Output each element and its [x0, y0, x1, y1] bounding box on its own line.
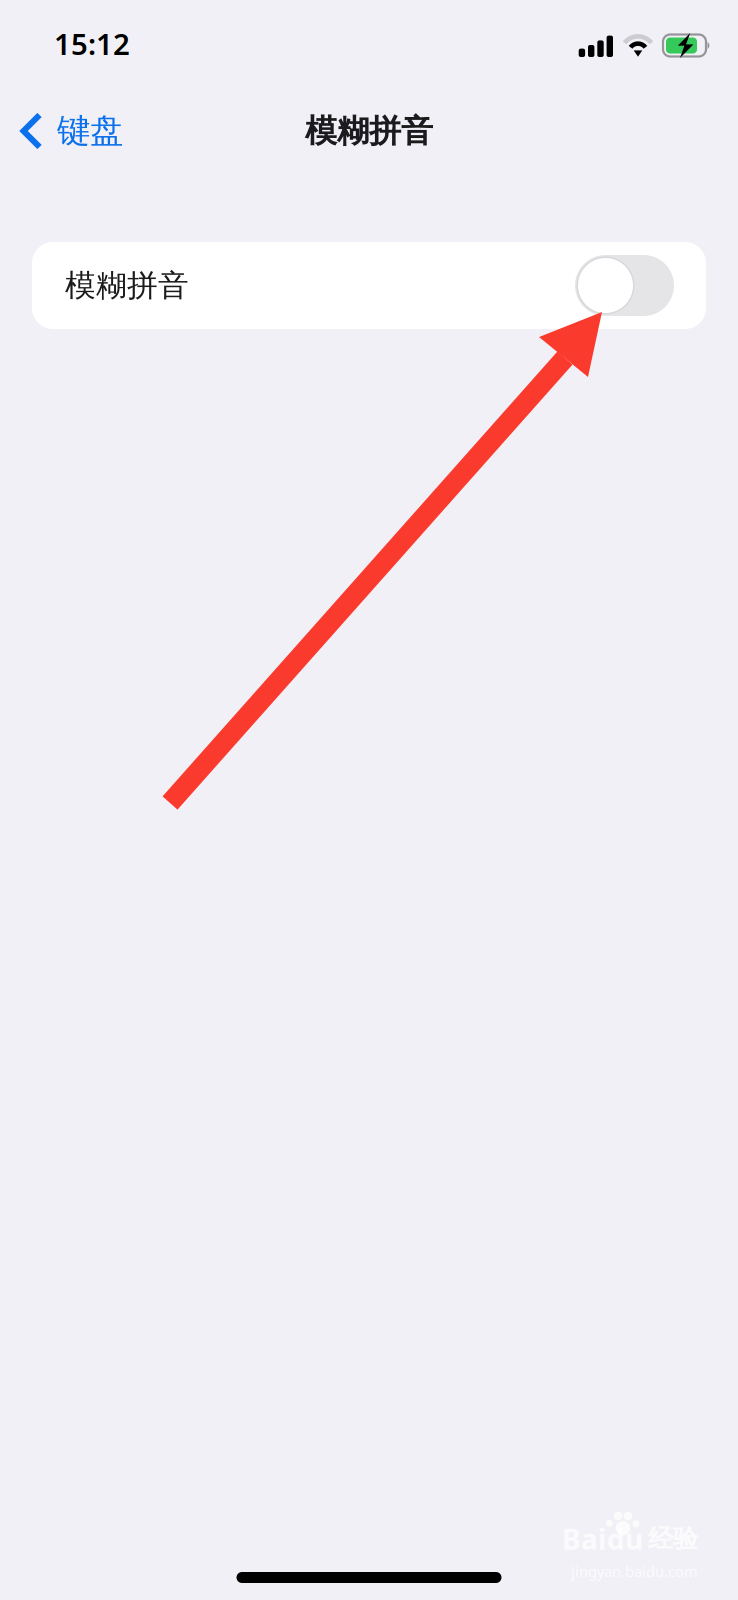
staticText: Bai [562, 1520, 606, 1557]
staticText: jingyan.baidu.com [571, 1561, 698, 1581]
staticText: 经验 [648, 1523, 698, 1554]
button[interactable]: 返回 键盘 [0, 99, 139, 163]
staticText: 模糊拼音 [305, 111, 433, 151]
button[interactable]: 模糊拼音 [32, 242, 706, 329]
staticText: 模糊拼音 [65, 267, 189, 304]
staticText: 15:12 [54, 24, 130, 63]
staticText: 键盘 [57, 110, 123, 151]
staticText: du [607, 1520, 643, 1557]
